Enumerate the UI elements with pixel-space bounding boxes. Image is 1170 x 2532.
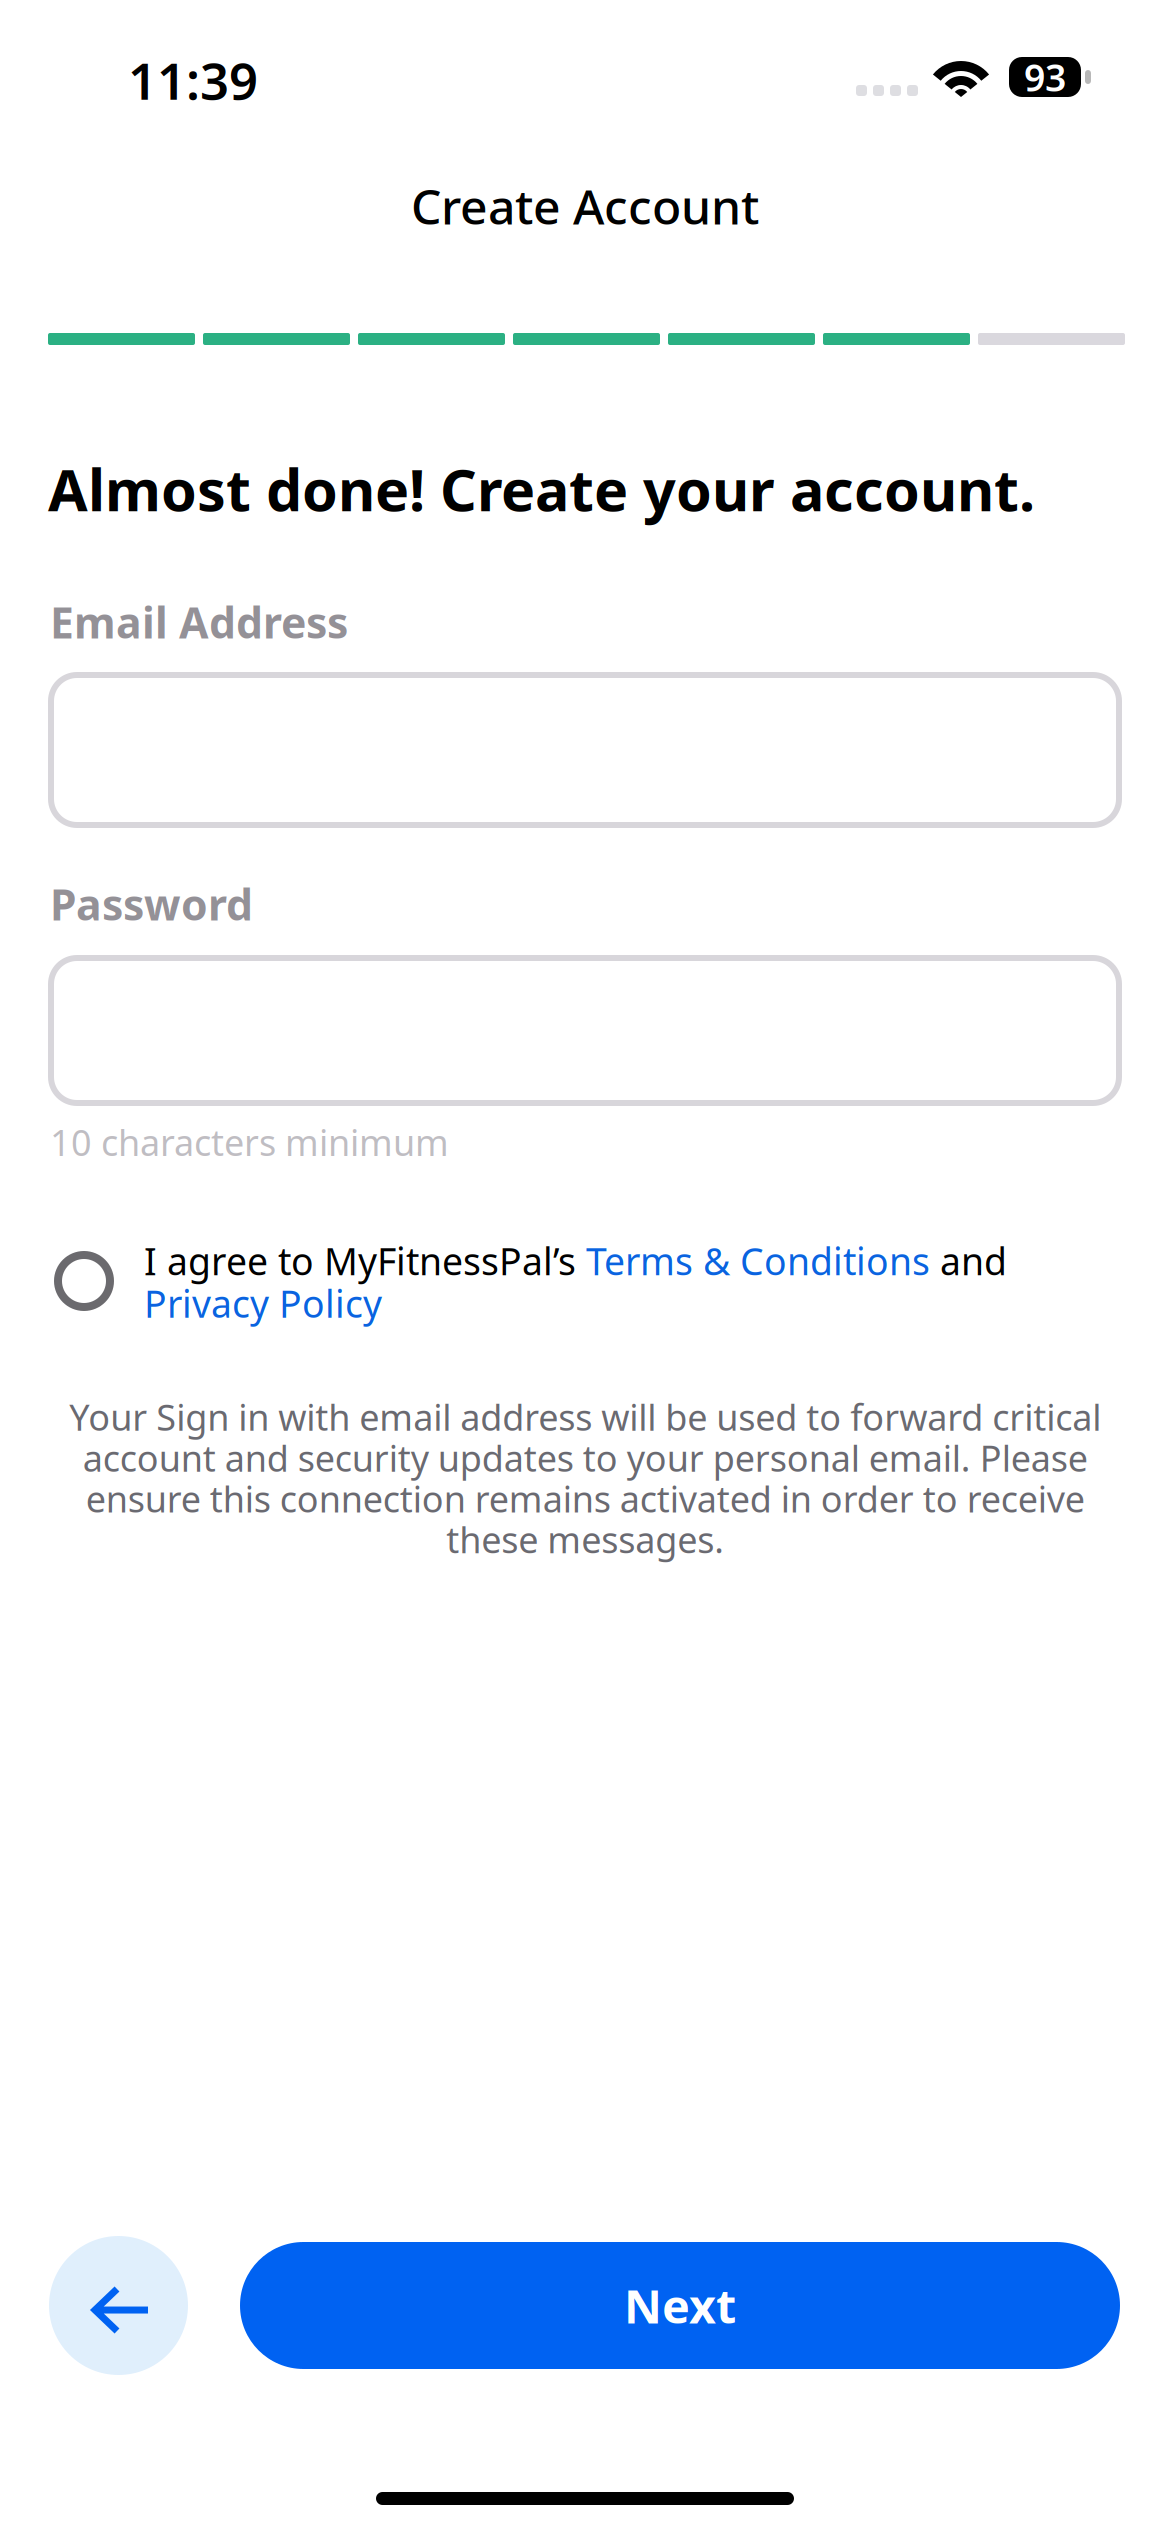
staticText: Your Sign in with email address will be … [69, 1393, 1101, 1563]
button[interactable]: Password [51, 958, 1119, 1103]
staticText: Next [624, 2274, 736, 2336]
button[interactable]: Back [49, 2236, 188, 2375]
staticText: Password [50, 876, 253, 932]
staticText: Almost done! Create your account. [48, 451, 1035, 527]
button[interactable]: Email Address [51, 675, 1119, 825]
staticText: Email Address [50, 594, 348, 650]
button[interactable]: I agree to MyFitnessPal’s Terms & Condit… [50, 1236, 1124, 1328]
button[interactable]: Next [240, 2242, 1120, 2369]
staticText: Create Account [411, 174, 759, 238]
staticText: 10 characters minimum [50, 1118, 449, 1166]
staticText: 93 [1024, 52, 1066, 102]
staticText: I agree to MyFitnessPal’s Terms & Condit… [144, 1236, 1007, 1328]
staticText: 11:39 [128, 46, 258, 114]
